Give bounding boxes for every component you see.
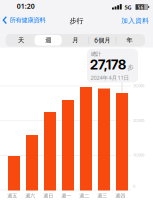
- staticText: 2024年4月11日: [90, 74, 129, 81]
- staticText: 5G: [124, 3, 131, 11]
- button[interactable]: 加入資料: [121, 16, 149, 25]
- staticText: 6個月: [94, 36, 110, 44]
- button[interactable]: 6個月: [89, 34, 116, 46]
- staticText: 週: [45, 36, 51, 44]
- staticText: 週二: [79, 192, 89, 199]
- staticText: 10,000: [133, 152, 144, 158]
- staticText: 月: [72, 36, 78, 44]
- button[interactable]: 月: [62, 34, 89, 46]
- staticText: 步行: [69, 16, 83, 25]
- staticText: 總計: [91, 50, 101, 57]
- staticText: 步: [127, 63, 133, 71]
- staticText: 天: [18, 36, 24, 44]
- staticText: 27,178: [90, 56, 126, 73]
- staticText: 週三: [97, 192, 107, 199]
- staticText: 所有健康資料: [9, 16, 45, 24]
- staticText: 週六: [25, 192, 35, 199]
- button[interactable]: 天: [7, 34, 35, 46]
- staticText: 加入資料: [121, 16, 149, 25]
- staticText: 0: [133, 183, 135, 189]
- staticText: 週四: [115, 192, 125, 199]
- staticText: 30,000: [133, 83, 144, 88]
- button[interactable]: 所有健康資料: [2, 16, 45, 24]
- staticText: 週日: [43, 192, 53, 199]
- staticText: 年: [126, 36, 132, 44]
- staticText: 56: [138, 5, 144, 11]
- button[interactable]: 週: [35, 34, 62, 46]
- staticText: 01:20: [17, 1, 35, 11]
- staticText: 週一: [61, 192, 71, 199]
- staticText: 週五: [7, 192, 17, 199]
- staticText: 20,000: [133, 117, 144, 123]
- button[interactable]: 年: [116, 34, 143, 46]
